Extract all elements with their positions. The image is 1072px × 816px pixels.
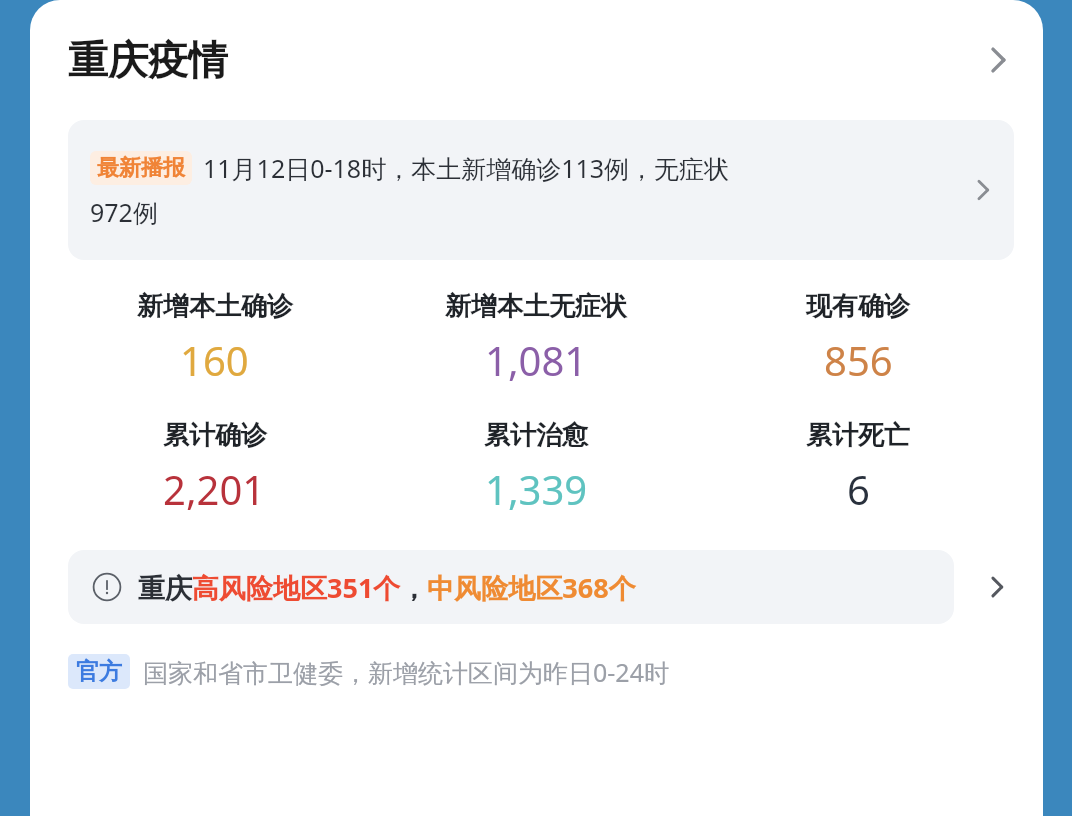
staticText: 累计确诊 xyxy=(163,419,267,452)
staticText: 最新播报 xyxy=(97,154,185,182)
staticText: 国家和省市卫健委，新增统计区间为昨日0-24时 xyxy=(143,655,669,689)
staticText: 11月12日0-18时，本土新增确诊113例，无症状 xyxy=(203,151,730,185)
other: 查看详情 xyxy=(977,39,1019,81)
staticText: 累计治愈 xyxy=(484,419,588,452)
staticText: 1,081 xyxy=(485,333,588,387)
staticText: 160 xyxy=(180,333,249,387)
staticText: 6 xyxy=(847,462,870,516)
staticText: 重庆高风险地区351个，中风险地区368个 xyxy=(138,569,636,606)
staticText: 972例 xyxy=(90,195,158,229)
staticText: 新增本土无症状 xyxy=(445,290,627,323)
staticText: 新增本土确诊 xyxy=(137,290,293,323)
staticText: 官方 xyxy=(76,657,122,686)
staticText: 856 xyxy=(824,333,893,387)
button[interactable]: 重庆疫情 xyxy=(30,0,1043,120)
staticText: 现有确诊 xyxy=(806,290,910,323)
other: 风险地区详情 xyxy=(980,570,1014,604)
staticText: 重庆疫情 xyxy=(68,35,228,85)
staticText: 累计死亡 xyxy=(806,419,910,452)
button[interactable]: 重庆高风险地区351个，中风险地区368个 xyxy=(68,550,1014,624)
staticText: 2,201 xyxy=(163,462,266,516)
other: 最新播报详情 xyxy=(966,173,1000,207)
staticText: 1,339 xyxy=(485,462,588,516)
button[interactable]: 最新播报 xyxy=(68,120,1014,260)
